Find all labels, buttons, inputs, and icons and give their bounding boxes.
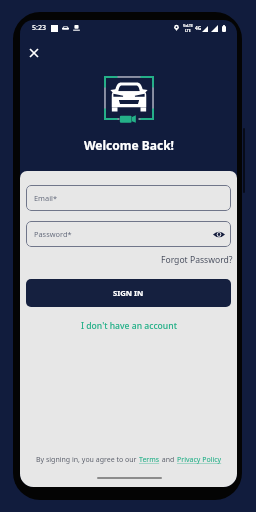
staticText: Terms [139, 455, 160, 465]
other: Location [174, 25, 179, 31]
button[interactable]: Terms [139, 455, 160, 465]
staticText: Privacy Policy [177, 455, 222, 465]
staticText: Forgot Password? [161, 254, 233, 266]
button[interactable]: Privacy Policy [177, 455, 222, 465]
staticText: Welcome Back! [84, 137, 174, 153]
button[interactable]: I don't have an account [77, 317, 181, 335]
staticText: By signing in, you agree to our [36, 455, 139, 465]
staticText: Email* [34, 193, 58, 203]
button[interactable]: SIGN IN [26, 279, 231, 307]
staticText: LTE [185, 28, 191, 33]
staticText: VoLTE [183, 23, 193, 28]
staticText: 5:23 [32, 23, 46, 33]
button[interactable]: Show password [213, 228, 225, 240]
button[interactable]: Close [25, 44, 43, 62]
staticText: and [160, 455, 177, 465]
button[interactable]: Email* [26, 185, 231, 211]
button[interactable]: Forgot Password? [158, 252, 236, 268]
staticText: 4G [195, 25, 202, 32]
staticText: SIGN IN [113, 288, 144, 298]
staticText: I don't have an account [81, 320, 177, 332]
button[interactable]: Password* [26, 221, 231, 247]
staticText: Password* [34, 229, 72, 239]
